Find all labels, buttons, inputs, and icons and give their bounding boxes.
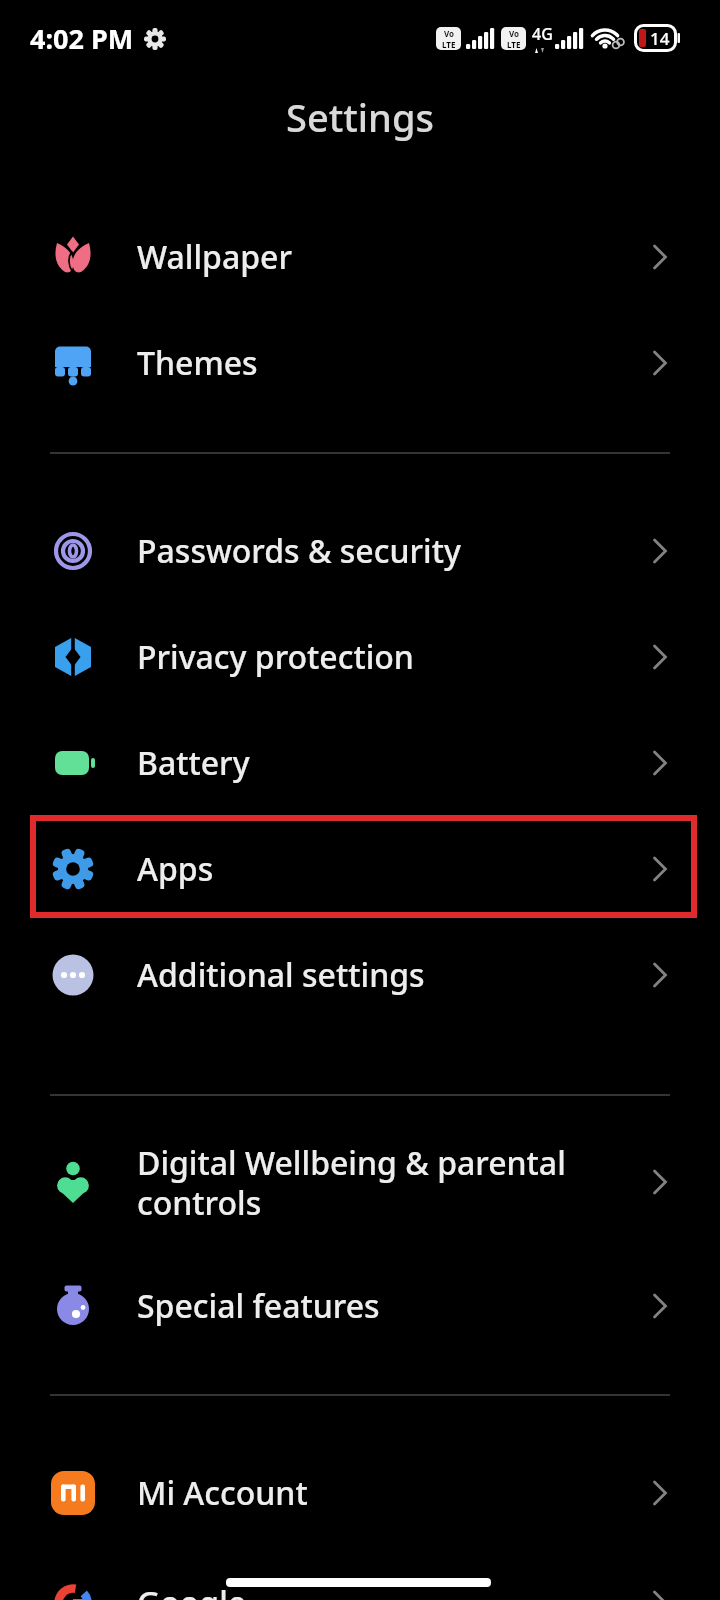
staticText: Themes bbox=[137, 341, 650, 385]
button[interactable]: Passwords & security bbox=[0, 498, 720, 604]
button[interactable]: Special features bbox=[0, 1253, 720, 1359]
staticText: Mi Account bbox=[137, 1471, 650, 1515]
staticText: Settings bbox=[286, 91, 434, 143]
button[interactable]: Digital Wellbeing & parental controls bbox=[0, 1123, 720, 1241]
staticText: Google bbox=[137, 1581, 650, 1600]
staticText: Passwords & security bbox=[137, 529, 650, 573]
button[interactable]: Additional settings bbox=[0, 922, 720, 1028]
staticText: LTE bbox=[507, 39, 521, 50]
button[interactable]: Battery bbox=[0, 710, 720, 816]
staticText: Wallpaper bbox=[137, 235, 650, 279]
staticText: 4:02 PM bbox=[30, 20, 134, 57]
staticText: 4G bbox=[532, 23, 553, 45]
staticText: Privacy protection bbox=[137, 635, 650, 679]
button[interactable]: Mi Account bbox=[0, 1440, 720, 1546]
button[interactable]: Google bbox=[0, 1550, 720, 1600]
staticText: 14 bbox=[650, 27, 670, 50]
button[interactable]: Apps bbox=[0, 816, 720, 922]
staticText: Additional settings bbox=[137, 953, 650, 997]
staticText: Apps bbox=[137, 847, 650, 891]
staticText: Vo bbox=[509, 28, 520, 39]
button[interactable]: Themes bbox=[0, 310, 720, 416]
staticText: LTE bbox=[442, 39, 456, 50]
staticText: Special features bbox=[137, 1284, 650, 1328]
button[interactable]: Wallpaper bbox=[0, 204, 720, 310]
staticText: Vo bbox=[444, 28, 455, 39]
button[interactable]: Privacy protection bbox=[0, 604, 720, 710]
staticText: Battery bbox=[137, 741, 650, 785]
staticText: Digital Wellbeing & parental controls bbox=[137, 1141, 650, 1224]
